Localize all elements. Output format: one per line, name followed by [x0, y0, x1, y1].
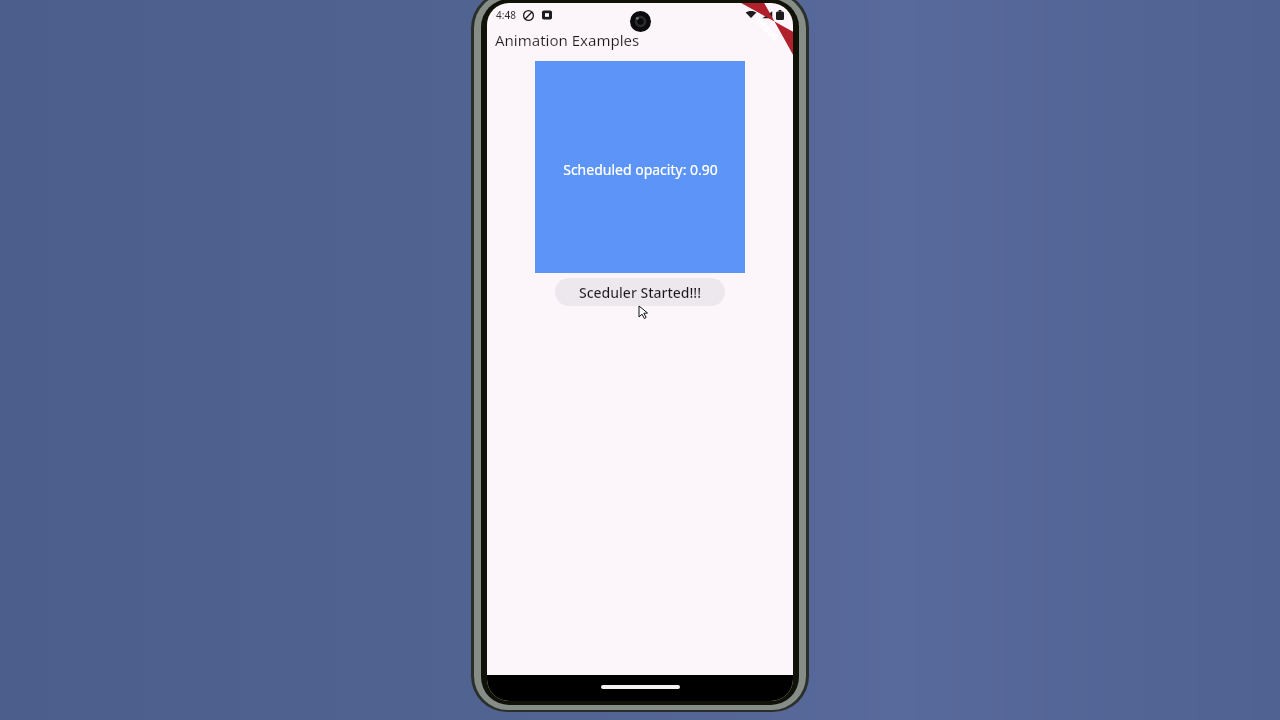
staticText: Animation Examples [495, 30, 640, 50]
other: Front camera [630, 11, 651, 32]
staticText: DEBUG [754, 16, 782, 43]
staticText: Sceduler Started!!! [579, 283, 701, 302]
button[interactable]: Sceduler Started!!! [555, 278, 725, 306]
staticText: Scheduled opacity: 0.90 [563, 160, 718, 179]
staticText: 4:48 [496, 8, 516, 22]
